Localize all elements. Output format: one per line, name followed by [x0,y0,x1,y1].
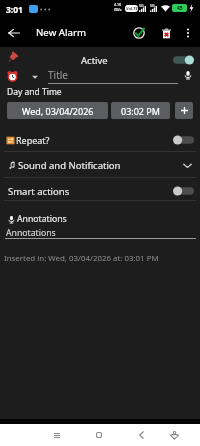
staticText: 45 [177,5,183,12]
button[interactable]: Toggle off [173,133,194,147]
button[interactable]: Hide keyboard [164,425,184,445]
button[interactable]: Voice input [181,68,194,81]
staticText: New Alarm [36,26,86,39]
button[interactable]: Wed, 03/04/2026 [7,102,108,119]
staticText: 3:01 [6,4,23,16]
button[interactable]: Pin [4,49,21,66]
button[interactable]: 03:02 PM [111,102,170,119]
button[interactable]: Sound and Notification [0,153,200,178]
staticText: 4.18 [114,2,121,7]
button[interactable]: Choose type [28,70,41,83]
staticText: Active [81,54,108,67]
staticText: Day and Time [7,86,62,98]
staticText: Annotations [6,227,56,239]
button[interactable]: Back [5,24,23,42]
button[interactable]: Recents [47,425,67,445]
button[interactable]: Toggle off [173,184,194,198]
staticText: Title [48,68,68,82]
staticText: 5G [139,3,144,8]
staticText: 03:02 PM [121,105,160,117]
staticText: Wed, 03/04/2026 [22,105,94,117]
staticText: Annotations [17,213,67,225]
staticText: 5G [150,3,155,8]
button[interactable]: Back [131,425,151,445]
staticText: Repeat? [16,134,50,146]
button[interactable]: Save alarm [130,24,148,42]
button[interactable]: Repeat? [0,129,200,151]
staticText: Smart actions [8,185,70,198]
button[interactable]: Active on [173,53,194,67]
staticText: VoLTE [126,6,138,11]
staticText: KB/s [114,7,122,12]
button[interactable]: Add time [175,102,193,119]
button[interactable]: Smart actions [0,180,200,202]
button[interactable]: More options [180,25,196,41]
button[interactable]: Delete alarm [157,24,175,42]
button[interactable]: Home [89,425,109,445]
staticText: Sound and Notification [18,159,121,172]
staticText: Inserted in: Wed, 03/04/2026 at: 03:01 P… [4,253,159,264]
